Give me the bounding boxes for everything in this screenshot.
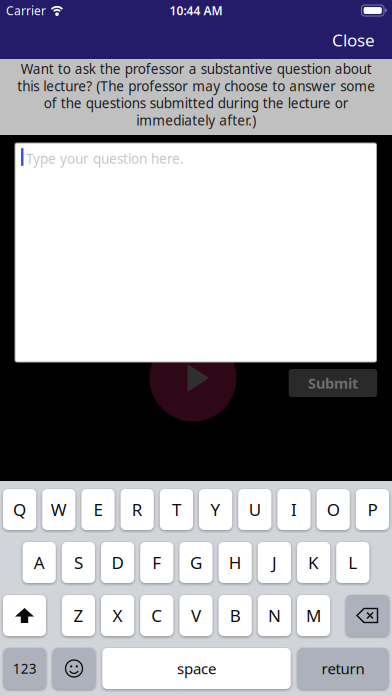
staticText: L [348, 551, 357, 574]
staticText: R [132, 498, 143, 521]
staticText: 10:44 AM [169, 2, 222, 18]
button[interactable]: Close [332, 29, 375, 51]
button[interactable]: Submit [289, 369, 377, 397]
button[interactable]: I [277, 489, 311, 530]
staticText: K [308, 551, 319, 574]
button[interactable]: W [42, 489, 75, 530]
staticText: I [291, 498, 297, 521]
staticText: Want to ask the professor a substantive … [17, 60, 375, 129]
button[interactable]: E [81, 489, 115, 530]
staticText: Q [13, 498, 26, 521]
button[interactable]: V [179, 595, 213, 636]
staticText: U [249, 498, 261, 521]
staticText: X [113, 604, 123, 627]
staticText: space [177, 658, 216, 678]
button[interactable]: J [258, 542, 291, 583]
button[interactable]: L [336, 542, 369, 583]
staticText: J [272, 551, 277, 574]
staticText: G [190, 551, 202, 574]
staticText: Submit [308, 373, 358, 393]
button[interactable]: Q [3, 489, 36, 530]
staticText: D [112, 551, 124, 574]
button[interactable]: A [23, 542, 56, 583]
staticText: A [34, 551, 45, 574]
button[interactable]: B [219, 595, 252, 636]
button[interactable]: D [101, 542, 134, 583]
staticText: E [93, 498, 102, 521]
staticText: P [367, 498, 377, 521]
button[interactable]: return [298, 648, 388, 689]
button[interactable]: O [317, 489, 350, 530]
staticText: M [306, 604, 321, 627]
button[interactable]: S [62, 542, 95, 583]
staticText: B [230, 604, 241, 627]
button[interactable]: F [140, 542, 173, 583]
button[interactable]: U [238, 489, 271, 530]
button[interactable]: space [102, 648, 291, 689]
staticText: T [172, 498, 181, 521]
staticText: Type your question here. [26, 149, 184, 167]
button[interactable]: Z [62, 595, 95, 636]
staticText: S [74, 551, 83, 574]
staticText: N [268, 604, 281, 627]
staticText: F [152, 551, 161, 574]
button[interactable]: Shift [3, 595, 46, 636]
button[interactable]: N [258, 595, 291, 636]
staticText: Close [332, 29, 375, 51]
button[interactable]: K [297, 542, 330, 583]
button[interactable]: G [179, 542, 213, 583]
staticText: H [229, 551, 242, 574]
button[interactable]: R [121, 489, 154, 530]
button[interactable]: P [356, 489, 389, 530]
button[interactable]: H [219, 542, 252, 583]
staticText: Y [211, 498, 221, 521]
staticText: 123 [13, 659, 37, 677]
button[interactable]: T [160, 489, 193, 530]
button[interactable]: Play [149, 334, 236, 421]
staticText: V [191, 604, 201, 627]
staticText: C [151, 604, 162, 627]
staticText: Z [73, 604, 83, 627]
button[interactable]: C [140, 595, 173, 636]
button[interactable]: M [297, 595, 330, 636]
button[interactable]: Delete [346, 595, 389, 636]
staticText: W [51, 498, 67, 521]
button[interactable]: X [101, 595, 134, 636]
button[interactable]: Y [199, 489, 232, 530]
button[interactable]: Emoji [53, 648, 95, 689]
staticText: O [327, 498, 340, 521]
staticText: return [321, 658, 364, 678]
button[interactable]: 123 [4, 648, 46, 689]
staticText: Carrier [6, 2, 46, 18]
